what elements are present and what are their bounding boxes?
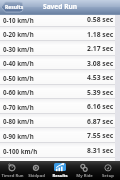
staticText: 0-30 km/h xyxy=(3,45,87,53)
staticText: 8.31 sec xyxy=(87,146,114,155)
button[interactable]: 0-80 km/h xyxy=(0,114,115,128)
staticText: 0-80 km/h xyxy=(3,117,87,125)
staticText: 6.16 sec xyxy=(87,102,114,111)
staticText: My Ride xyxy=(76,173,93,179)
staticText: 3.08 sec xyxy=(87,59,114,68)
staticText: Timed Run xyxy=(1,173,24,179)
button[interactable]: 0-10 km/h xyxy=(0,12,115,27)
button[interactable]: 0-20 km/h xyxy=(0,27,115,41)
button[interactable]: 0-100 km/h xyxy=(0,143,115,158)
button[interactable]: Results xyxy=(48,161,72,180)
staticText: Skidpad xyxy=(28,173,45,179)
staticText: 0-10 km/h xyxy=(3,16,87,24)
staticText: 0-100 km/h xyxy=(3,147,87,155)
button[interactable]: 0-70 km/h xyxy=(0,99,115,114)
button[interactable]: Skidpad xyxy=(24,161,48,180)
staticText: 5.39 sec xyxy=(87,88,114,97)
button[interactable]: Timed Run xyxy=(0,161,24,180)
staticText: 7.55 sec xyxy=(87,131,114,140)
button[interactable]: 0-90 km/h xyxy=(0,128,115,143)
button[interactable]: 0-40 km/h xyxy=(0,56,115,70)
staticText: Saved Run xyxy=(43,2,78,11)
button[interactable]: 0-60 km/h xyxy=(0,85,115,99)
staticText: 4.53 sec xyxy=(87,73,114,82)
staticText: 1.18 sec xyxy=(87,30,114,39)
staticText: 6.87 sec xyxy=(87,117,114,126)
staticText: Results xyxy=(52,173,68,179)
staticText: 2.17 sec xyxy=(87,44,114,53)
staticText: 0-40 km/h xyxy=(3,59,87,67)
staticText: Results xyxy=(5,4,24,11)
staticText: 0-60 km/h xyxy=(3,88,87,96)
button[interactable]: Back to Results xyxy=(1,2,23,12)
button[interactable]: 0-50 km/h xyxy=(0,70,115,85)
staticText: 0.58 sec xyxy=(87,15,114,24)
button[interactable]: Setup xyxy=(96,161,120,180)
staticText: Setup xyxy=(102,173,114,179)
staticText: 0-90 km/h xyxy=(3,132,87,140)
button[interactable]: 0-30 km/h xyxy=(0,41,115,56)
staticText: 0-70 km/h xyxy=(3,103,87,111)
staticText: 0-20 km/h xyxy=(3,30,87,38)
button[interactable]: My Ride xyxy=(72,161,96,180)
staticText: 0-50 km/h xyxy=(3,74,87,82)
